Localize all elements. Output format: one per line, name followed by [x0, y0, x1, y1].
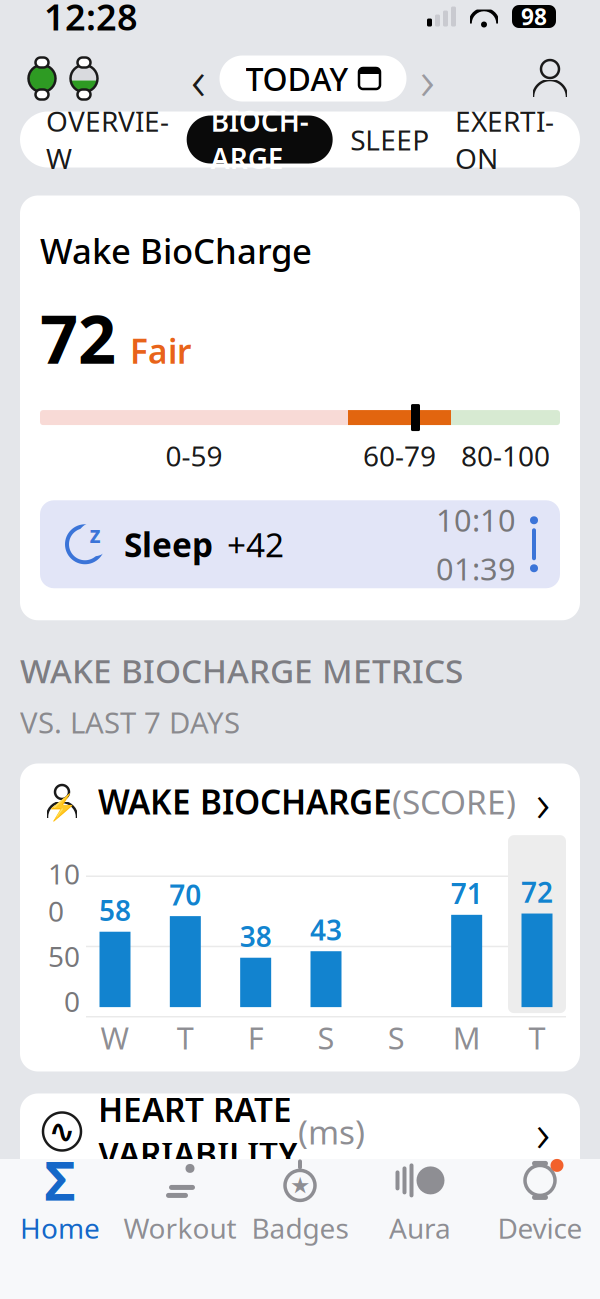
button[interactable]: Workout	[120, 1159, 240, 1245]
staticText: Home	[20, 1209, 100, 1247]
staticText: ›	[420, 41, 435, 116]
button[interactable]: ★	[240, 1159, 360, 1245]
button[interactable]: Device	[480, 1159, 600, 1245]
staticText: Σ	[44, 1145, 75, 1216]
staticText: 80-100	[461, 437, 550, 474]
staticText: 29	[168, 1223, 202, 1262]
staticText: Device	[497, 1209, 582, 1247]
button[interactable]: Profile	[526, 55, 574, 101]
staticText: 30	[309, 1215, 343, 1254]
staticText: 40	[48, 1199, 80, 1237]
staticText: ›	[536, 1096, 550, 1167]
staticText: Fair	[130, 329, 191, 373]
staticText: W	[100, 1017, 129, 1058]
staticText: 58	[99, 891, 131, 929]
staticText: 98	[521, 1, 547, 32]
staticText: HEART RATE VARIABILITY	[98, 1087, 298, 1176]
staticText: 70	[169, 876, 201, 913]
staticText: Sleep	[124, 522, 213, 566]
staticText: (ms)	[298, 1109, 365, 1154]
staticText: OVERVIEW	[46, 102, 169, 177]
staticText: M	[453, 1017, 481, 1058]
staticText: ‹	[191, 41, 206, 116]
button[interactable]: SLEEP	[342, 115, 437, 163]
button[interactable]: ∿	[20, 1093, 580, 1169]
button[interactable]: Watch one battery	[26, 56, 58, 100]
staticText: VS. LAST 7 DAYS	[20, 702, 240, 741]
staticText: ⚡	[46, 793, 78, 822]
staticText: T	[177, 1017, 194, 1058]
button[interactable]: Previous day	[177, 55, 219, 101]
staticText: 10:10	[436, 499, 516, 540]
staticText: 100	[48, 855, 80, 929]
staticText: 71	[451, 875, 483, 912]
staticText: z	[89, 519, 100, 549]
staticText: 01:39	[436, 548, 516, 589]
staticText: 43	[310, 911, 342, 948]
button[interactable]: Watch two battery	[68, 56, 100, 100]
staticText: 29	[379, 1223, 413, 1262]
staticText: 60-79	[363, 437, 436, 474]
staticText: (SCORE)	[392, 779, 516, 824]
staticText: 38	[240, 917, 272, 955]
button[interactable]: OVERVIEW	[38, 115, 177, 163]
staticText: ›	[536, 766, 550, 837]
staticText: S	[317, 1017, 334, 1058]
staticText: BIOCHARGE	[211, 102, 309, 177]
staticText: +42	[227, 522, 284, 566]
button[interactable]: z	[40, 500, 560, 588]
staticText: 72	[521, 873, 553, 910]
staticText: ★	[290, 1172, 310, 1198]
staticText: F	[248, 1017, 264, 1058]
button[interactable]: ⚡	[20, 763, 580, 839]
button[interactable]: Next day	[406, 55, 448, 101]
button[interactable]: EXERTION	[447, 115, 562, 163]
staticText: S	[388, 1017, 405, 1058]
staticText: Badges	[251, 1209, 348, 1247]
staticText: EXERTION	[455, 102, 554, 177]
staticText: ∿	[48, 1113, 75, 1150]
staticText: 0-59	[165, 437, 222, 474]
staticText: T	[528, 1017, 545, 1058]
button[interactable]: Aura	[360, 1159, 480, 1245]
button[interactable]: TODAY	[219, 55, 406, 101]
staticText: 72	[40, 294, 116, 382]
staticText: Aura	[389, 1209, 451, 1247]
staticText: 29	[239, 1223, 273, 1262]
staticText: 34	[520, 1183, 554, 1222]
staticText: 0	[64, 983, 80, 1020]
staticText: 32	[98, 1199, 132, 1238]
staticText: TODAY	[245, 57, 348, 100]
button[interactable]: Σ	[0, 1159, 120, 1245]
staticText: 50	[48, 937, 80, 975]
staticText: Workout	[123, 1209, 236, 1247]
staticText: Wake BioCharge	[40, 227, 312, 273]
button[interactable]: BIOCHARGE	[187, 115, 333, 163]
staticText: 12:28	[44, 0, 138, 40]
staticText: WAKE BIOCHARGE	[98, 779, 392, 824]
staticText: WAKE BIOCHARGE METRICS	[20, 648, 463, 693]
staticText: SLEEP	[350, 121, 429, 158]
